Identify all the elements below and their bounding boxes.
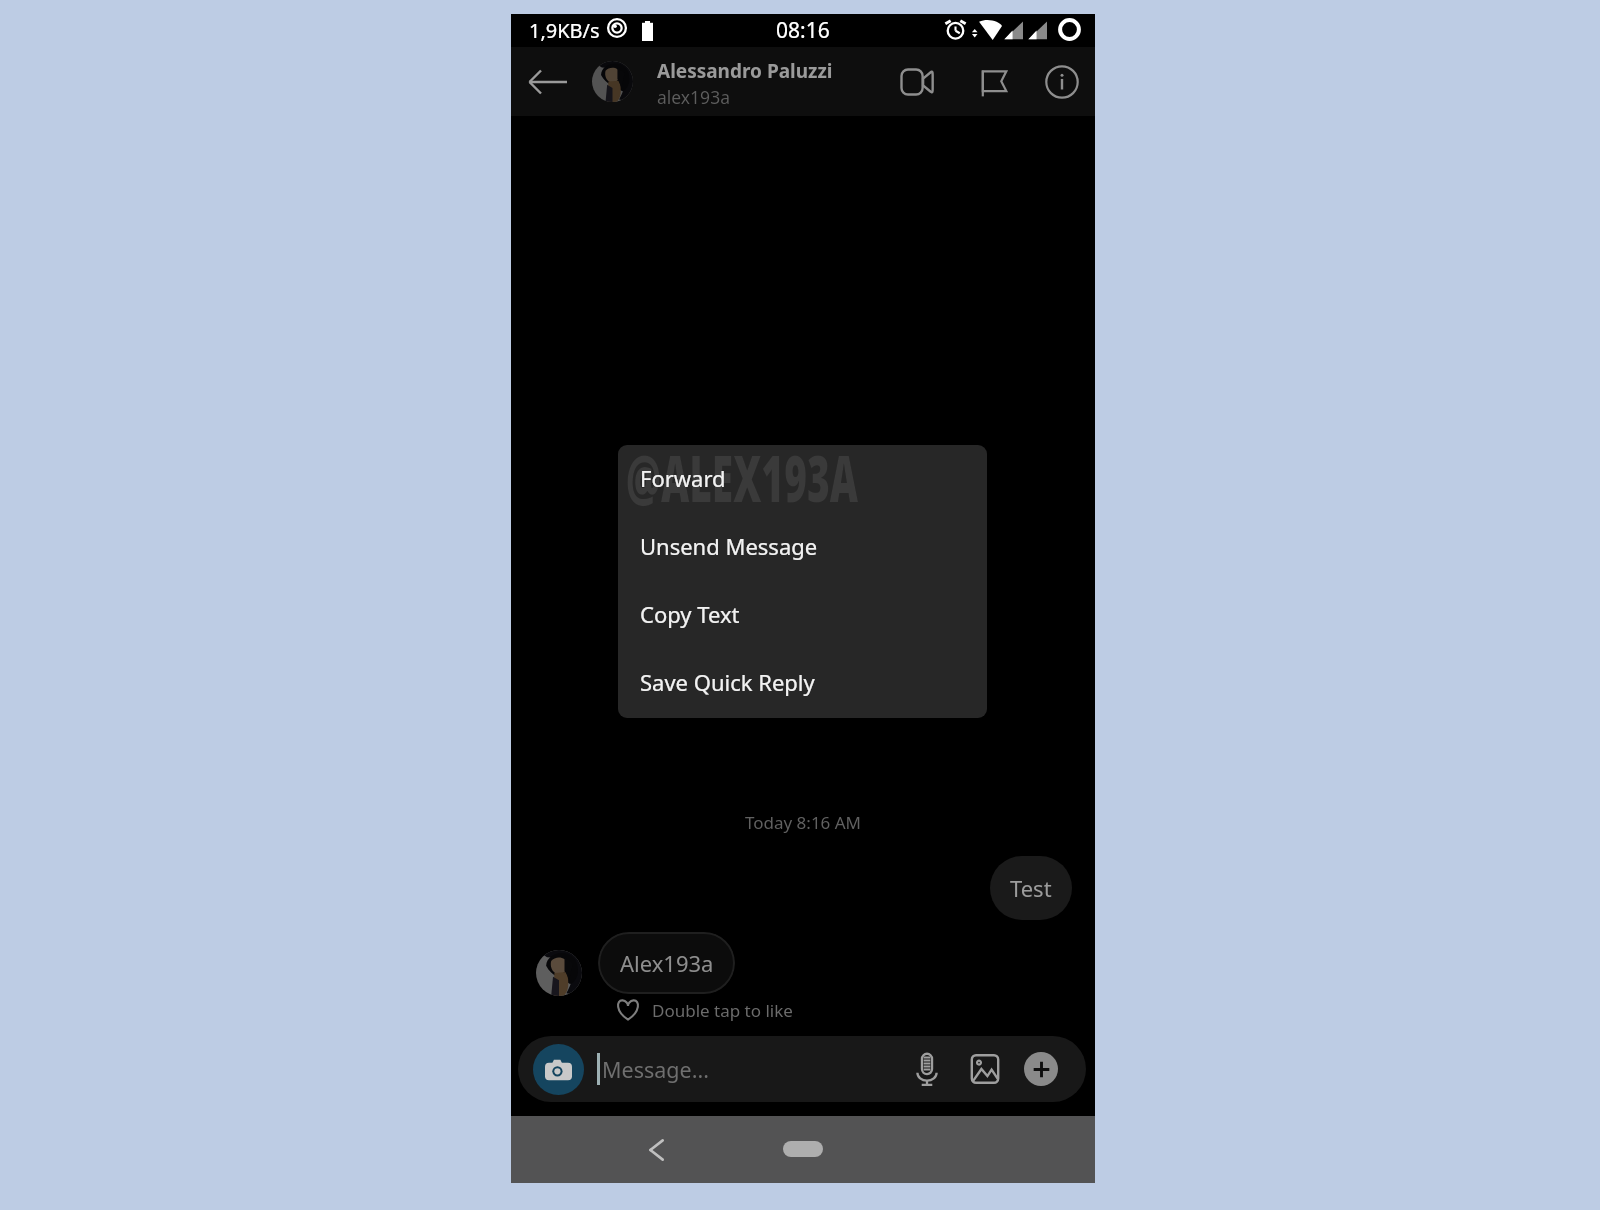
staticText: Unsend Message [640, 531, 818, 561]
staticText: Save Quick Reply [640, 667, 815, 697]
button[interactable]: Voice message [904, 1046, 950, 1092]
button[interactable]: More options [1024, 1052, 1058, 1086]
staticText: Double tap to like [652, 999, 793, 1022]
staticText: Copy Text [640, 599, 740, 629]
button[interactable]: Back [523, 58, 571, 106]
button[interactable]: Camera [533, 1044, 584, 1095]
staticText: Message... [602, 1055, 709, 1084]
staticText: Forward [640, 463, 726, 493]
button[interactable]: Copy Text [618, 588, 987, 640]
button[interactable]: Alessandro Paluzzi [585, 47, 885, 116]
staticText: Today 8:16 AM [511, 811, 1095, 834]
button[interactable]: Forward [618, 452, 987, 504]
staticText: @ALEX193A [626, 445, 858, 520]
button[interactable]: Flag [967, 55, 1021, 109]
staticText: 1,9KB/s [529, 17, 600, 44]
button[interactable]: Double tap to like [615, 996, 793, 1024]
staticText: alex193a [657, 85, 730, 109]
button[interactable]: Video call [889, 55, 943, 109]
staticText: Alex193a [620, 948, 714, 978]
button[interactable]: Back [632, 1126, 680, 1174]
button[interactable]: Test [990, 856, 1072, 920]
button[interactable]: Alex193a [598, 932, 735, 994]
button[interactable]: Unsend Message [618, 520, 987, 572]
staticText: 08:16 [776, 16, 830, 45]
button[interactable]: Info [1034, 54, 1090, 110]
button[interactable]: Home [783, 1141, 823, 1157]
staticText: Test [1010, 873, 1052, 903]
button[interactable]: Gallery [962, 1046, 1008, 1092]
button[interactable]: Save Quick Reply [618, 656, 987, 708]
staticText: Alessandro Paluzzi [657, 58, 833, 84]
